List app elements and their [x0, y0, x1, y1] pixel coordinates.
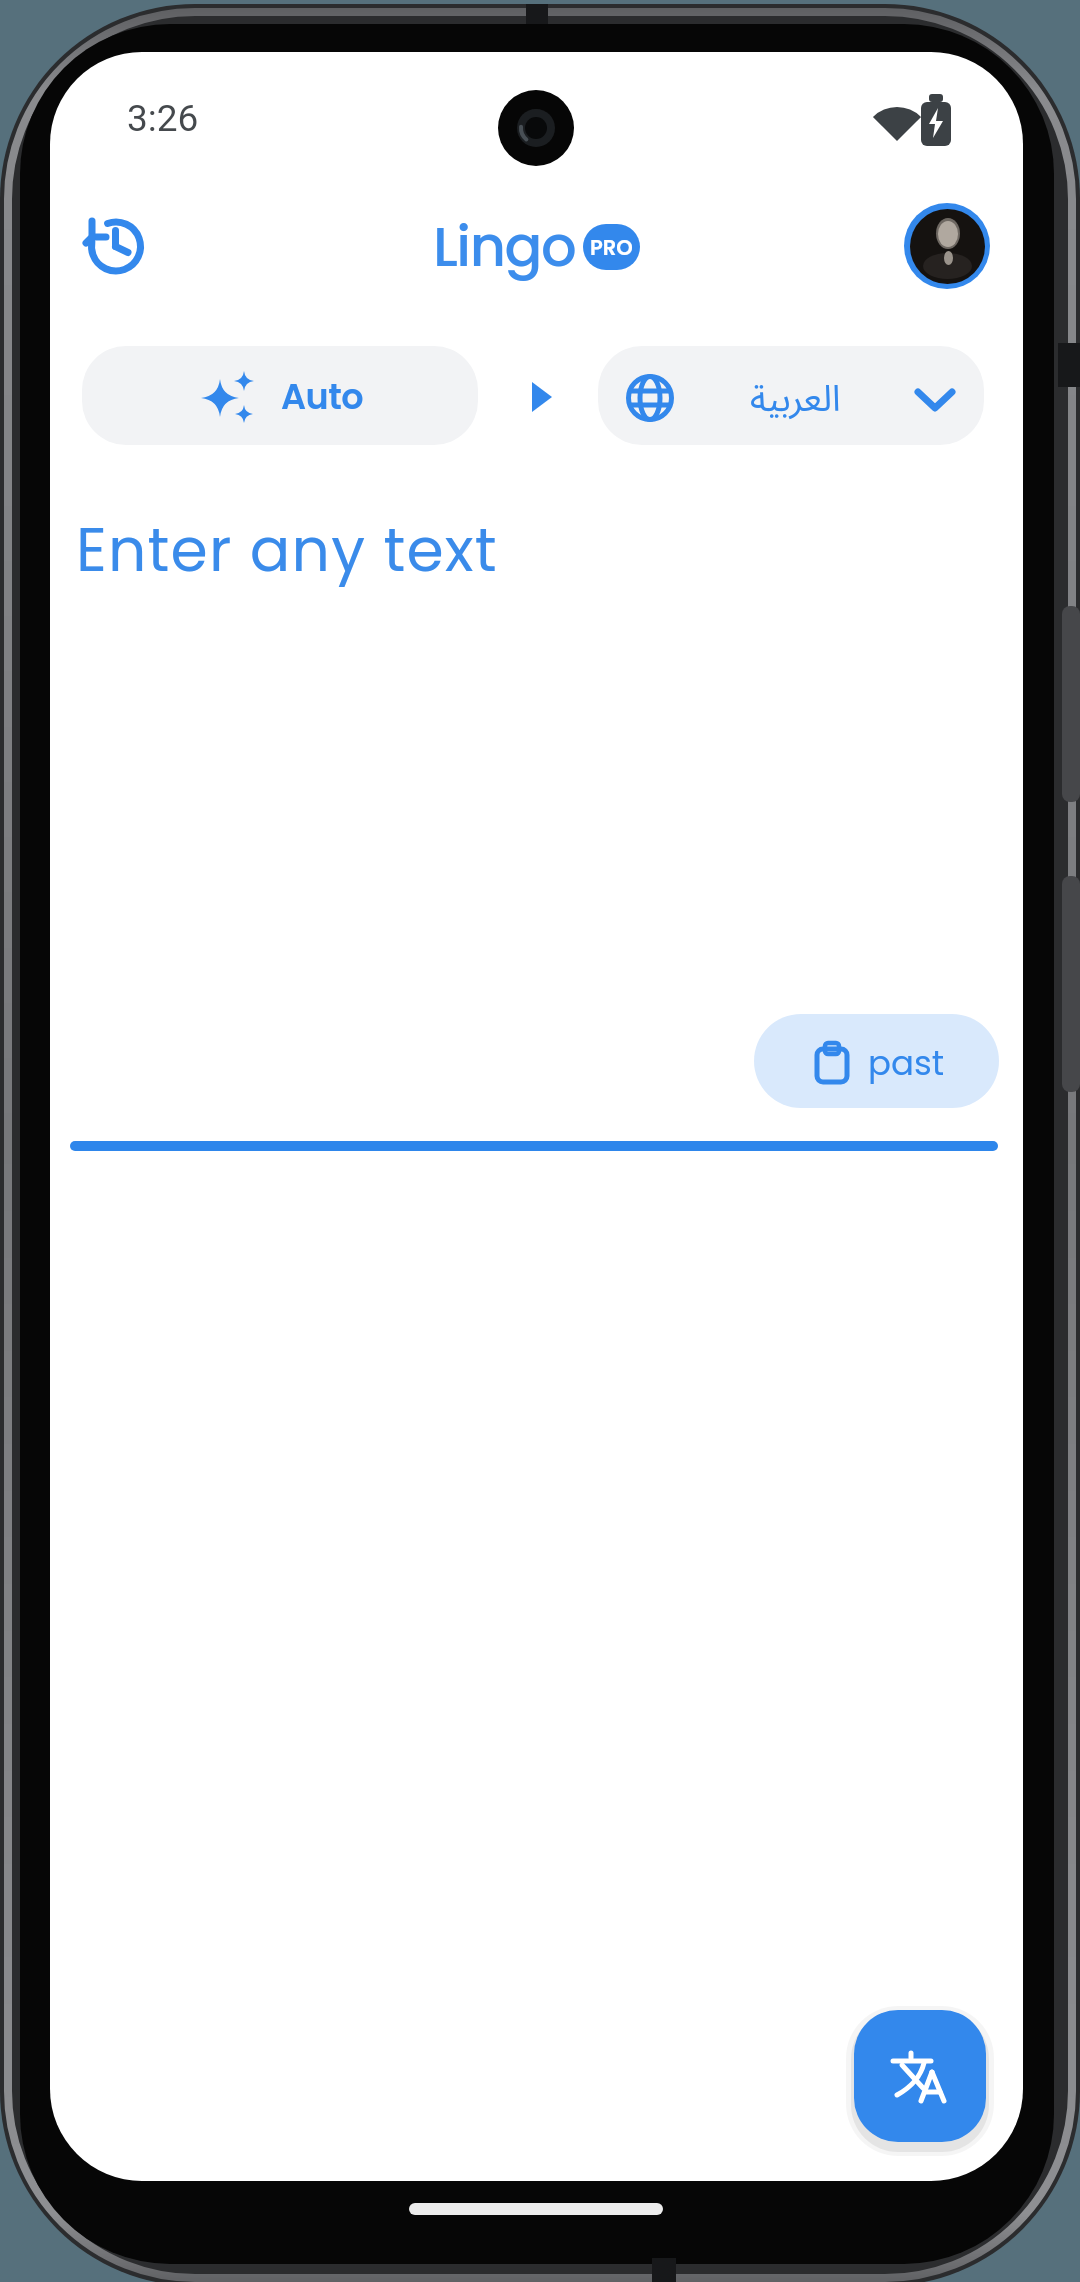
button[interactable] [598, 346, 984, 445]
staticText: PRO [590, 233, 633, 262]
button[interactable] [82, 346, 478, 445]
staticText: 3:26 [127, 97, 199, 140]
staticText: Enter any text [76, 508, 498, 592]
staticText: Auto [281, 372, 364, 421]
staticText: past [868, 1039, 945, 1087]
button[interactable] [904, 203, 990, 289]
button[interactable] [754, 1014, 999, 1108]
staticText: Lingo [433, 207, 576, 285]
button[interactable] [854, 2010, 986, 2142]
staticText: العربية [750, 362, 841, 434]
button[interactable] [80, 210, 152, 282]
